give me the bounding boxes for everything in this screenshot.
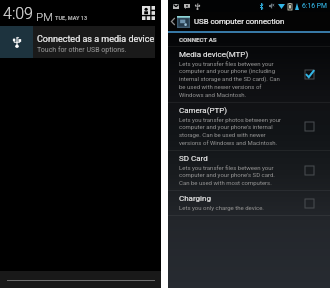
- button[interactable]: Selected: [302, 67, 316, 81]
- button[interactable]: Not selected: [302, 163, 316, 177]
- staticText: SD Card: [179, 154, 208, 163]
- button[interactable]: Connected as a media device: [0, 26, 161, 58]
- staticText: CONNECT AS: [179, 36, 217, 43]
- staticText: Touch for other USB options.: [37, 46, 127, 54]
- staticText: 6:16 PM: [302, 2, 328, 10]
- staticText: TUE, MAY 13: [55, 15, 88, 21]
- button[interactable]: Charging: [168, 191, 330, 215]
- button[interactable]: Quick settings: [142, 6, 155, 20]
- button[interactable]: Camera(PTP): [168, 103, 330, 150]
- staticText: Lets you transfer files between your com…: [179, 164, 283, 186]
- button[interactable]: Not selected: [302, 196, 316, 210]
- button[interactable]: Media device(MTP): [168, 47, 330, 102]
- staticText: Media device(MTP): [179, 50, 249, 59]
- button[interactable]: Close notification shade: [0, 271, 161, 288]
- button[interactable]: Not selected: [302, 119, 316, 133]
- staticText: Lets you transfer files between your com…: [179, 60, 283, 98]
- staticText: Charging: [179, 194, 211, 203]
- staticText: Lets you only charge the device.: [179, 204, 264, 211]
- staticText: Connected as a media device: [37, 34, 155, 45]
- staticText: USB computer connection: [194, 17, 285, 26]
- staticText: PM: [36, 10, 54, 23]
- staticText: 4:09: [3, 4, 33, 23]
- staticText: Lets you transfer photos between your co…: [179, 116, 283, 146]
- staticText: Camera(PTP): [179, 106, 228, 115]
- button[interactable]: Navigate up: [168, 12, 177, 31]
- button[interactable]: SD Card: [168, 151, 330, 190]
